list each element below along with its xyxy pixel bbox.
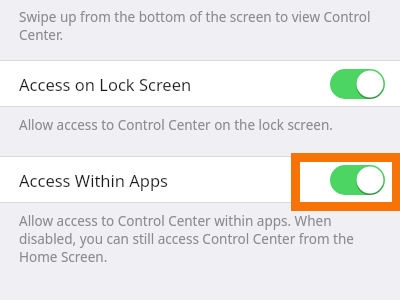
staticText: Access on Lock Screen	[19, 73, 192, 95]
button[interactable]: Access Within Apps	[330, 165, 385, 195]
staticText: Allow access to Control Center on the lo…	[19, 116, 372, 134]
button[interactable]: Access Within Apps	[0, 157, 400, 202]
button[interactable]: Access on Lock Screen	[330, 69, 385, 99]
button[interactable]: Access on Lock Screen	[0, 61, 400, 106]
staticText: Swipe up from the bottom of the screen t…	[19, 8, 372, 44]
staticText: Access Within Apps	[19, 169, 169, 191]
staticText: Allow access to Control Center within ap…	[19, 212, 372, 266]
